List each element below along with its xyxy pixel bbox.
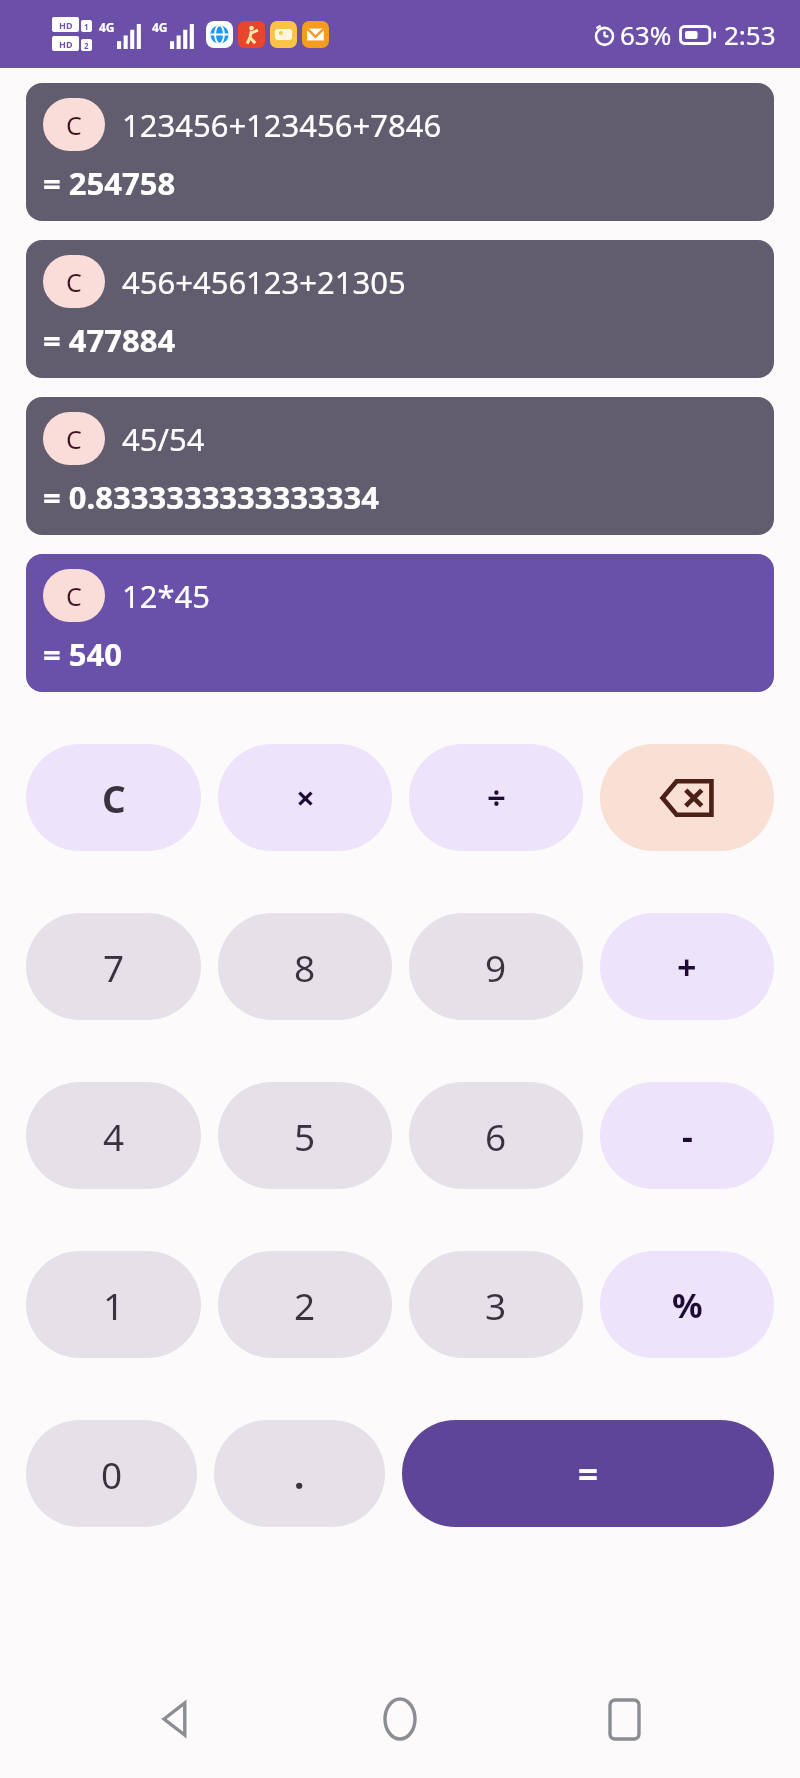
button[interactable]: 2 xyxy=(218,1251,392,1358)
staticText: HD xyxy=(59,38,73,50)
staticText: 1 xyxy=(84,21,89,32)
button[interactable]: 0 xyxy=(26,1420,197,1527)
staticText: 12*45 xyxy=(122,575,211,617)
button[interactable]: 8 xyxy=(218,913,392,1020)
staticText: 8 xyxy=(294,942,316,992)
button[interactable]: 5 xyxy=(218,1082,392,1189)
button[interactable]: 7 xyxy=(26,913,201,1020)
staticText: = 477884 xyxy=(43,319,176,361)
button[interactable]: + xyxy=(600,913,774,1020)
button[interactable]: = xyxy=(402,1420,774,1527)
button[interactable]: C xyxy=(26,397,774,535)
staticText: C xyxy=(66,265,82,299)
staticText: 4 xyxy=(103,1111,125,1161)
staticText: C xyxy=(66,422,82,456)
staticText: . xyxy=(294,1449,305,1499)
staticText: 123456+123456+7846 xyxy=(122,104,442,146)
button[interactable]: Home xyxy=(352,1671,448,1767)
button[interactable]: . xyxy=(214,1420,385,1527)
staticText: 45/54 xyxy=(122,418,205,460)
button[interactable]: - xyxy=(600,1082,774,1189)
button[interactable]: Recents xyxy=(576,1671,672,1767)
button[interactable]: 3 xyxy=(409,1251,583,1358)
staticText: = 254758 xyxy=(43,162,176,204)
staticText: 0 xyxy=(101,1449,123,1499)
staticText: HD xyxy=(59,19,73,31)
staticText: C xyxy=(66,579,82,613)
staticText: = 0.8333333333333334 xyxy=(43,476,379,518)
staticText: 7 xyxy=(103,942,125,992)
button[interactable]: × xyxy=(218,744,392,851)
staticText: C xyxy=(102,773,126,823)
button[interactable]: 9 xyxy=(409,913,583,1020)
staticText: 3 xyxy=(485,1280,507,1330)
staticText: = 540 xyxy=(43,633,122,675)
staticText: × xyxy=(296,775,315,820)
staticText: 4G xyxy=(99,19,115,35)
button[interactable]: 4 xyxy=(26,1082,201,1189)
button[interactable]: C xyxy=(26,240,774,378)
staticText: = xyxy=(578,1450,599,1498)
staticText: 6 xyxy=(485,1111,507,1161)
button[interactable]: C xyxy=(26,83,774,221)
staticText: 4G xyxy=(152,19,168,35)
staticText: 63% xyxy=(620,17,672,52)
button[interactable]: 1 xyxy=(26,1251,201,1358)
button[interactable]: C xyxy=(26,554,774,692)
staticText: 2:53 xyxy=(724,17,776,52)
staticText: 456+456123+21305 xyxy=(122,261,406,303)
button[interactable]: C xyxy=(26,744,201,851)
button[interactable]: ÷ xyxy=(409,744,583,851)
staticText: 9 xyxy=(485,942,507,992)
staticText: - xyxy=(682,1113,693,1159)
button[interactable]: Back xyxy=(128,1671,224,1767)
staticText: % xyxy=(672,1282,703,1328)
staticText: C xyxy=(66,108,82,142)
button[interactable]: Backspace xyxy=(600,744,774,851)
staticText: 2 xyxy=(294,1280,316,1330)
button[interactable]: % xyxy=(600,1251,774,1358)
staticText: + xyxy=(677,944,697,990)
staticText: 5 xyxy=(294,1111,316,1161)
button[interactable]: 6 xyxy=(409,1082,583,1189)
staticText: 1 xyxy=(103,1280,125,1330)
staticText: 2 xyxy=(84,40,89,51)
staticText: ÷ xyxy=(487,775,506,820)
